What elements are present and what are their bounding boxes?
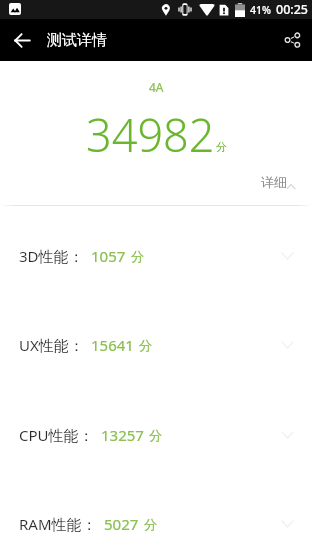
button[interactable]: Back [0, 19, 44, 61]
staticText: 分 [149, 427, 162, 443]
staticText: RAM性能： [19, 514, 97, 534]
staticText: UX性能： [19, 335, 84, 355]
staticText: 详细 [261, 174, 287, 190]
staticText: 1057 [91, 246, 126, 266]
staticText: 分 [216, 140, 227, 154]
staticText: 4A [149, 79, 164, 95]
staticText: 3D性能： [19, 246, 84, 266]
staticText: 34982 [86, 104, 215, 165]
button[interactable]: 详细 [249, 168, 312, 196]
staticText: 00:25 [276, 1, 309, 18]
staticText: 分 [139, 337, 152, 353]
staticText: CPU性能： [19, 425, 94, 445]
staticText: 分 [131, 248, 144, 264]
staticText: 13257 [101, 425, 144, 445]
staticText: 15641 [91, 335, 134, 355]
staticText: 测试详情 [47, 31, 107, 50]
staticText: 41% [250, 3, 271, 17]
button[interactable]: 3D性能： [0, 211, 312, 301]
button[interactable]: Share [272, 19, 312, 61]
button[interactable]: UX性能： [0, 300, 312, 390]
staticText: 分 [144, 516, 157, 532]
staticText: 5027 [104, 514, 139, 534]
button[interactable]: CPU性能： [0, 390, 312, 480]
button[interactable]: RAM性能： [0, 479, 312, 556]
